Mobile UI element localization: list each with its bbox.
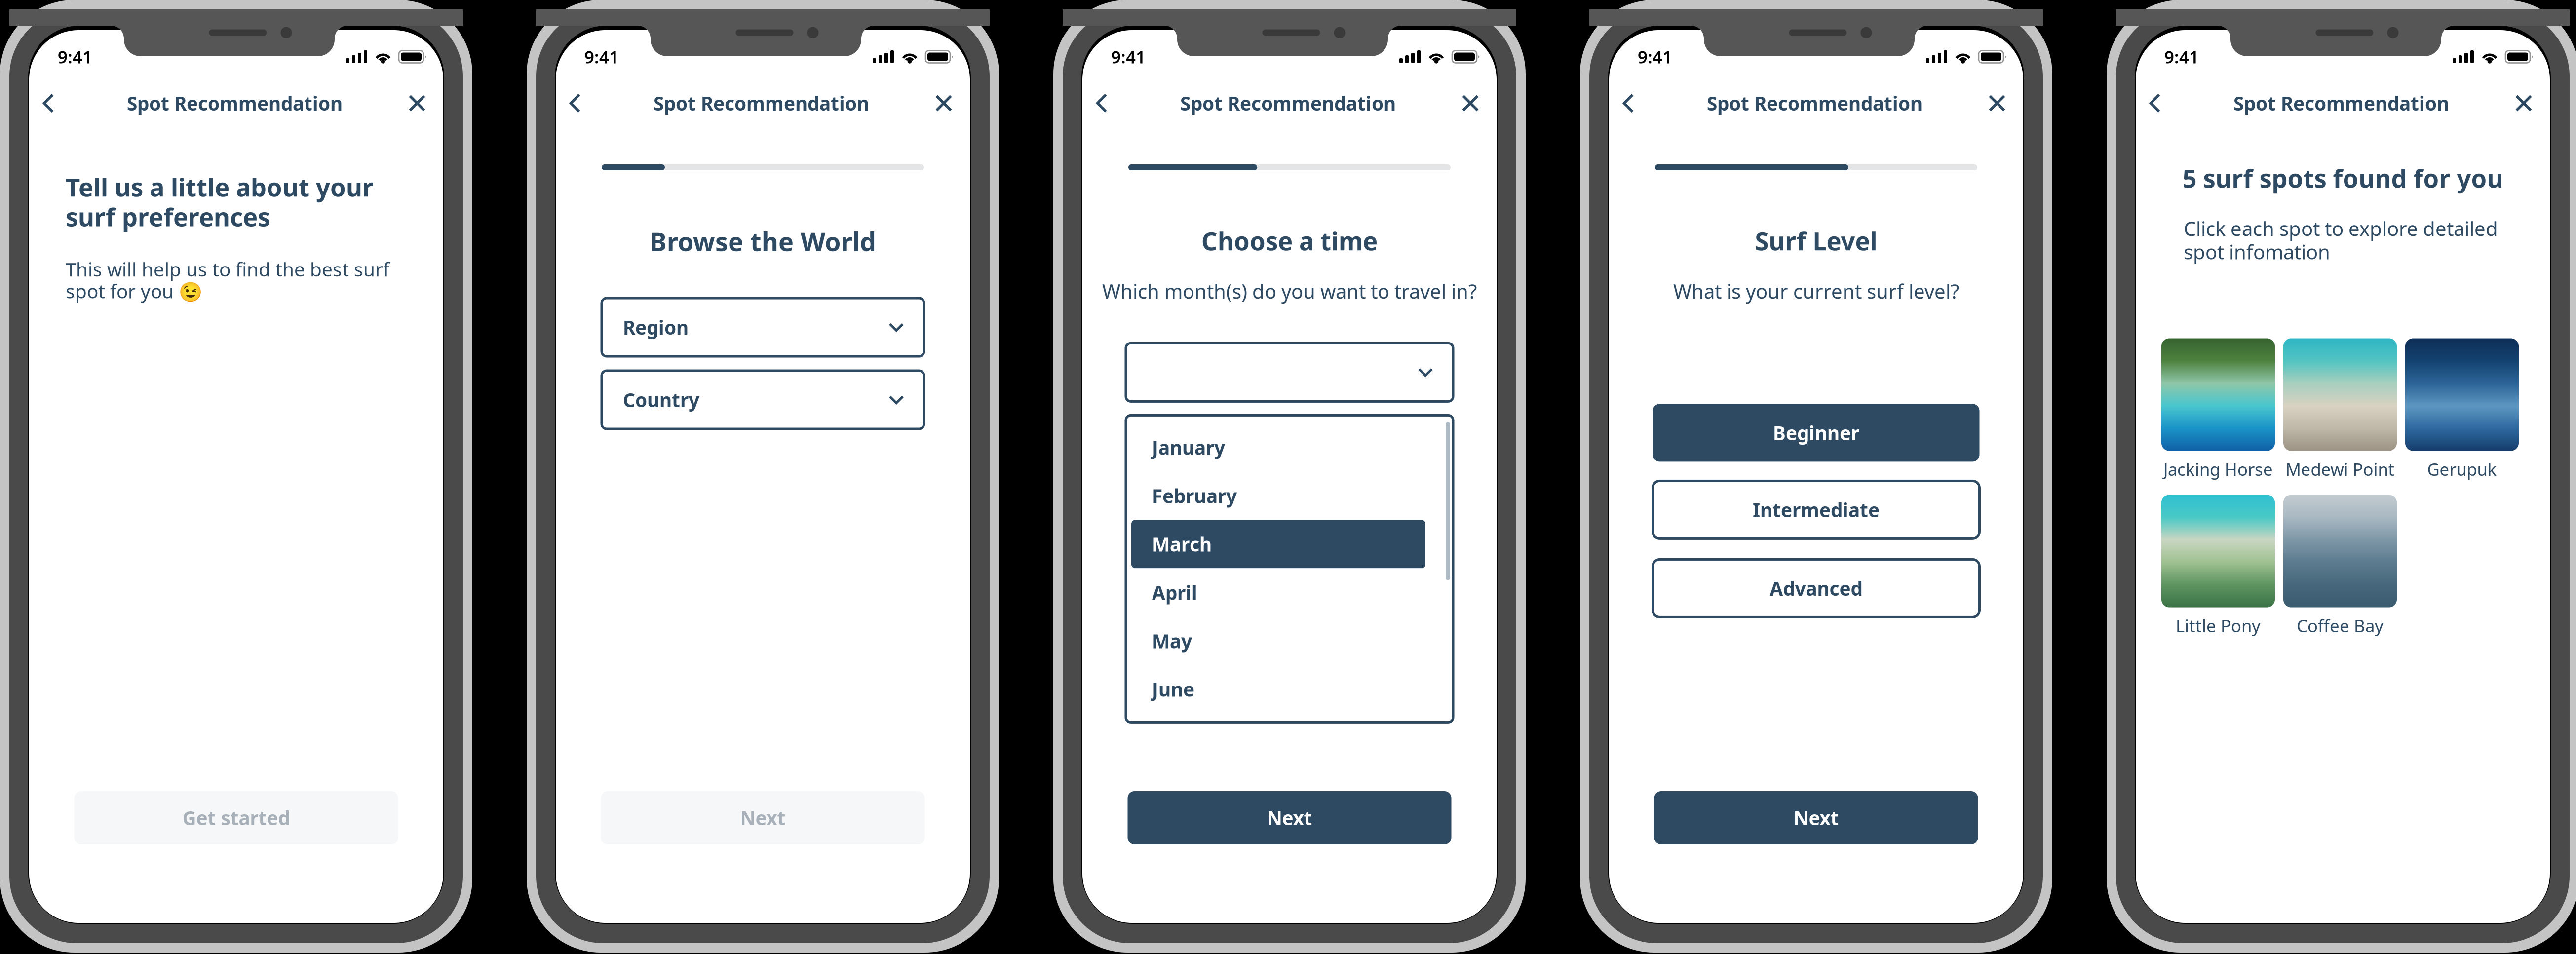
staticText: Get started bbox=[182, 805, 290, 830]
button[interactable]: Back bbox=[1082, 84, 1121, 122]
staticText: Next bbox=[1267, 805, 1312, 830]
staticText: Region bbox=[623, 315, 689, 340]
button[interactable] bbox=[1126, 343, 1453, 401]
staticText: March bbox=[1152, 531, 1212, 557]
button[interactable]: Coffee Bay bbox=[2283, 495, 2397, 637]
button[interactable]: Little Pony bbox=[2161, 495, 2275, 637]
staticText: Which month(s) do you want to travel in? bbox=[1102, 278, 1477, 304]
staticText: Advanced bbox=[1770, 576, 1863, 601]
staticText: January bbox=[1152, 435, 1225, 460]
button[interactable]: Close bbox=[928, 84, 967, 122]
staticText: Next bbox=[1793, 805, 1839, 830]
staticText: 9:41 bbox=[58, 45, 92, 68]
button[interactable]: Back bbox=[556, 84, 594, 122]
button[interactable]: Next bbox=[1654, 791, 1978, 844]
button[interactable]: Next bbox=[601, 791, 925, 844]
staticText: Spot Recommendation bbox=[127, 90, 343, 116]
staticText: 5 surf spots found for you bbox=[2182, 161, 2503, 195]
staticText: Little Pony bbox=[2176, 614, 2261, 637]
button[interactable]: Close bbox=[1455, 84, 1494, 122]
staticText: February bbox=[1152, 483, 1237, 508]
button[interactable]: Region bbox=[602, 298, 924, 356]
button[interactable]: April bbox=[1131, 568, 1425, 617]
button[interactable]: Close bbox=[1982, 84, 2020, 122]
button[interactable]: Back bbox=[1609, 84, 1648, 122]
staticText: What is your current surf level? bbox=[1673, 278, 1959, 304]
staticText: Surf Level bbox=[1755, 224, 1877, 257]
staticText: Spot Recommendation bbox=[1707, 90, 1922, 116]
staticText: Choose a time bbox=[1201, 224, 1378, 257]
staticText: Jacking Horse bbox=[2163, 458, 2273, 480]
staticText: Gerupuk bbox=[2427, 458, 2497, 480]
button[interactable]: Back bbox=[2136, 84, 2174, 122]
staticText: Click each spot to explore detailed spot… bbox=[2184, 215, 2498, 265]
button[interactable]: Intermediate bbox=[1653, 481, 1980, 539]
staticText: 9:41 bbox=[584, 45, 619, 68]
button[interactable]: June bbox=[1131, 665, 1425, 713]
staticText: Country bbox=[623, 387, 699, 412]
staticText: Browse the World bbox=[650, 224, 876, 258]
staticText: Spot Recommendation bbox=[654, 90, 869, 116]
staticText: Beginner bbox=[1773, 420, 1859, 445]
staticText: May bbox=[1152, 628, 1192, 653]
staticText: Coffee Bay bbox=[2297, 614, 2384, 637]
staticText: Intermediate bbox=[1753, 497, 1880, 522]
staticText: Next bbox=[740, 805, 786, 830]
button[interactable]: January bbox=[1131, 423, 1425, 472]
button[interactable]: Advanced bbox=[1653, 559, 1980, 617]
staticText: June bbox=[1152, 676, 1194, 702]
staticText: 9:41 bbox=[1638, 45, 1672, 68]
button[interactable]: Country bbox=[602, 371, 924, 429]
button[interactable]: Next bbox=[1128, 791, 1451, 844]
button[interactable]: Back bbox=[29, 84, 68, 122]
button[interactable]: February bbox=[1131, 472, 1425, 520]
button[interactable]: Beginner bbox=[1653, 404, 1980, 462]
staticText: Spot Recommendation bbox=[2233, 90, 2449, 116]
button[interactable]: May bbox=[1131, 617, 1425, 665]
staticText: 9:41 bbox=[1111, 45, 1146, 68]
staticText: Medewi Point bbox=[2286, 458, 2395, 480]
staticText: Spot Recommendation bbox=[1180, 90, 1396, 116]
button[interactable]: Close bbox=[2508, 84, 2547, 122]
button[interactable]: Jacking Horse bbox=[2161, 338, 2275, 480]
staticText: This will help us to find the best surf … bbox=[66, 256, 389, 304]
staticText: 9:41 bbox=[2164, 45, 2199, 68]
staticText: Tell us a little about your surf prefere… bbox=[66, 170, 374, 233]
staticText: April bbox=[1152, 580, 1197, 605]
button[interactable]: Gerupuk bbox=[2405, 338, 2519, 480]
button[interactable]: Get started bbox=[74, 791, 398, 844]
button[interactable]: Medewi Point bbox=[2283, 338, 2397, 480]
button[interactable]: Close bbox=[402, 84, 440, 122]
button[interactable]: March bbox=[1131, 520, 1425, 568]
